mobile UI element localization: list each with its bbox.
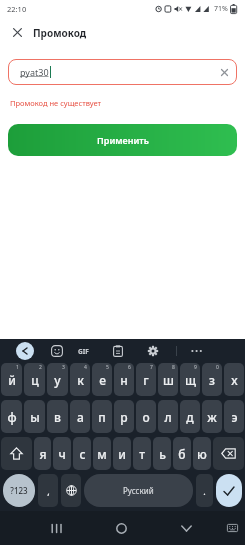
staticText: п [98, 409, 106, 425]
staticText: ь [159, 446, 166, 462]
staticText: . [203, 485, 206, 497]
staticText: 3 [62, 364, 65, 371]
staticText: г [143, 372, 149, 388]
staticText: с [79, 446, 86, 462]
staticText: ф [7, 409, 17, 425]
staticText: т [139, 446, 145, 462]
staticText: 2 [39, 364, 42, 371]
staticText: ы [30, 409, 40, 425]
staticText: б [178, 446, 186, 462]
staticText: 5 [106, 364, 109, 371]
staticText: д [186, 409, 194, 425]
staticText: , [47, 485, 50, 497]
staticText: ц [31, 372, 39, 388]
staticText: м [97, 446, 107, 462]
staticText: а [77, 409, 84, 425]
staticText: я [39, 446, 47, 462]
staticText: 7 [150, 364, 153, 371]
staticText: 1 [16, 364, 19, 371]
staticText: 22:10 [7, 4, 27, 14]
staticText: 8 [172, 364, 175, 371]
staticText: 0 [216, 364, 219, 371]
staticText: к [77, 372, 84, 388]
staticText: и [118, 446, 126, 462]
staticText: Применить [97, 134, 149, 146]
staticText: Промокод [33, 26, 87, 40]
staticText: 6 [128, 364, 131, 371]
staticText: о [142, 409, 150, 425]
staticText: щ [185, 372, 196, 388]
staticText: 71% [214, 4, 228, 14]
staticText: у [54, 372, 61, 388]
staticText: р [120, 409, 128, 425]
staticText: ?123 [10, 485, 28, 496]
staticText: н [120, 372, 128, 388]
staticText: х [231, 372, 238, 388]
staticText: Русский [123, 485, 154, 496]
staticText: pyat30 [20, 66, 49, 78]
staticText: 4 [84, 364, 87, 371]
staticText: ю [197, 446, 207, 462]
staticText: л [164, 409, 172, 425]
staticText: ш [163, 372, 174, 388]
staticText: в [54, 409, 61, 425]
staticText: з [209, 372, 215, 388]
staticText: Промокод не существует [10, 98, 101, 108]
staticText: й [8, 372, 16, 388]
staticText: ж [207, 409, 217, 425]
staticText: е [99, 372, 106, 388]
staticText: GIF [78, 347, 89, 356]
staticText: ч [58, 446, 66, 462]
staticText: 9 [194, 364, 197, 371]
staticText: э [231, 409, 238, 425]
